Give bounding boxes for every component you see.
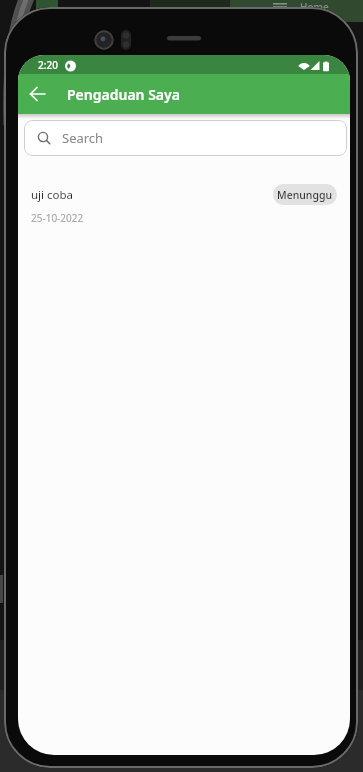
staticText: uji coba [31,187,74,203]
staticText: Menunggu [277,188,333,202]
button[interactable] [18,74,58,114]
button[interactable]: uji coba [18,156,350,225]
staticText: Search [62,129,104,147]
staticText: 25-10-2022 [31,211,84,225]
staticText: Home [300,0,329,14]
staticText: Pengaduan Saya [67,85,180,104]
staticText: 2:20 [38,58,58,72]
button[interactable]: Search [24,120,347,156]
